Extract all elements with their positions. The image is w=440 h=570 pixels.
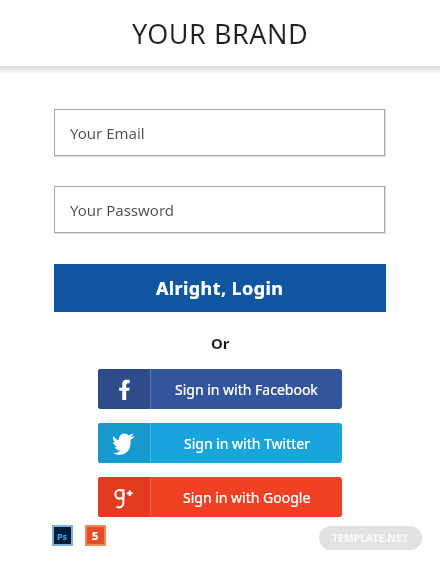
staticText: Sign in with Google — [183, 488, 311, 507]
staticText: TEMPLATE.NET — [332, 531, 409, 545]
button[interactable]: Sign in with Google — [98, 477, 342, 517]
staticText: Sign in with Facebook — [175, 380, 318, 399]
staticText: Alright, Login — [156, 276, 284, 301]
button[interactable]: Sign in with Facebook — [98, 369, 342, 409]
button[interactable]: Sign in with Twitter — [98, 423, 342, 463]
button[interactable]: Your Password — [54, 186, 385, 233]
staticText: Or — [211, 333, 230, 353]
staticText: YOUR BRAND — [132, 15, 309, 52]
button[interactable]: Your Email — [54, 109, 385, 156]
staticText: Your Email — [70, 123, 145, 143]
staticText: Your Password — [70, 200, 175, 220]
button[interactable]: Alright, Login — [54, 264, 386, 312]
staticText: 5 — [92, 528, 99, 543]
staticText: Ps — [57, 530, 68, 542]
staticText: Sign in with Twitter — [184, 434, 310, 453]
